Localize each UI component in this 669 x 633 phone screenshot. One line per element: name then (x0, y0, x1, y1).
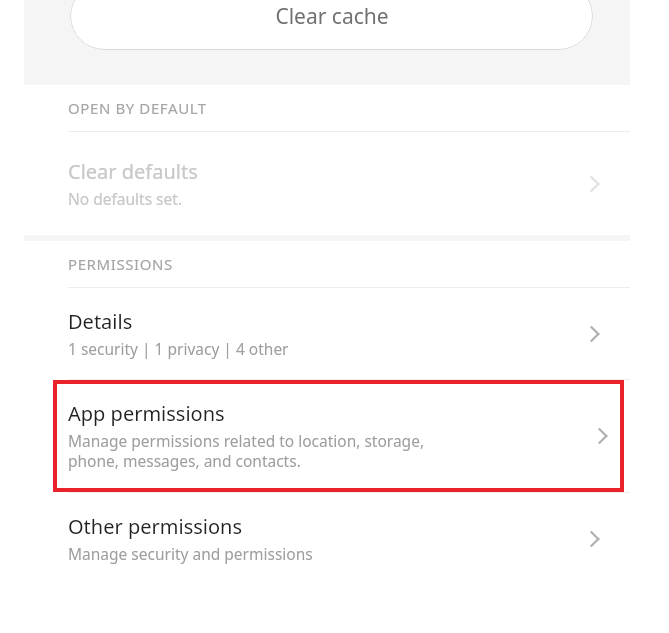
staticText: Clear cache (275, 2, 389, 31)
staticText: App permissions (68, 400, 225, 427)
staticText: 1 security | 1 privacy | 4 other (68, 338, 289, 359)
staticText: No defaults set. (68, 188, 183, 209)
staticText: OPEN BY DEFAULT (68, 98, 207, 118)
staticText: Manage permissions related to location, … (68, 430, 425, 472)
button[interactable]: Clear defaults (24, 132, 630, 235)
button[interactable]: App permissions (53, 380, 624, 492)
staticText: Manage security and permissions (68, 543, 313, 564)
staticText: Clear defaults (68, 158, 198, 185)
staticText: Other permissions (68, 513, 242, 540)
button[interactable]: Clear cache (70, 0, 593, 50)
button[interactable]: Details (24, 288, 630, 379)
staticText: PERMISSIONS (68, 254, 173, 274)
staticText: Details (68, 308, 133, 335)
button[interactable]: Other permissions (24, 493, 630, 584)
